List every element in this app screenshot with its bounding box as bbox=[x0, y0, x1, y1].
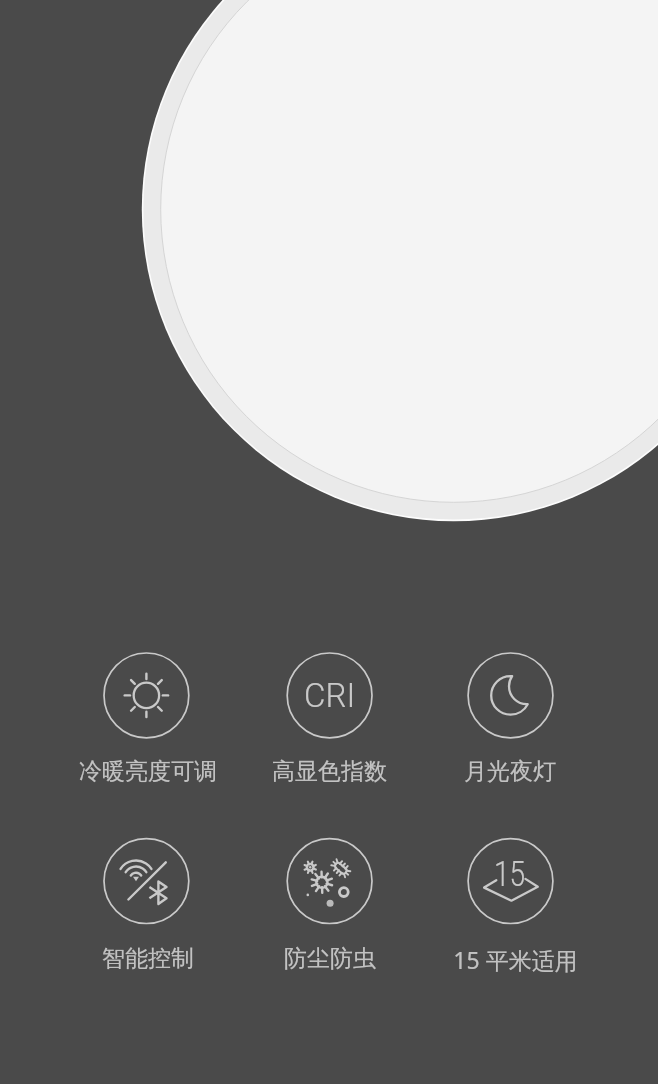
button[interactable]: Smart control bbox=[58, 829, 234, 976]
button[interactable]: Moonlight night light bbox=[423, 643, 599, 789]
staticText: 冷暖亮度可调 bbox=[79, 757, 217, 786]
button[interactable]: Suitable for 15 square metres bbox=[423, 829, 599, 976]
staticText: CRI bbox=[304, 676, 356, 715]
button[interactable]: Dust and insect proof bbox=[242, 829, 418, 976]
staticText: 15 bbox=[494, 854, 525, 895]
staticText: 智能控制 bbox=[102, 944, 194, 973]
staticText: 月光夜灯 bbox=[464, 757, 556, 786]
button[interactable]: Adjustable colour temperature and bright… bbox=[58, 643, 234, 789]
staticText: 15 平米适用 bbox=[453, 944, 578, 975]
staticText: 高显色指数 bbox=[272, 757, 387, 786]
staticText: 防尘防虫 bbox=[284, 944, 376, 973]
button[interactable]: High colour rendering index bbox=[242, 643, 418, 789]
